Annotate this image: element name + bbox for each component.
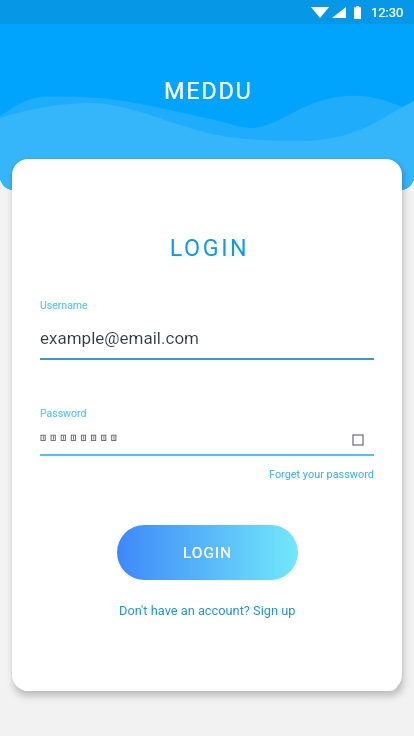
staticText: LOGIN xyxy=(183,544,233,562)
staticText: LOGIN xyxy=(17,234,402,261)
button[interactable]: Toggle password visibility xyxy=(350,432,366,444)
button[interactable]: LOGIN xyxy=(117,525,298,580)
button[interactable]: Don't have an account? Sign up xyxy=(119,603,296,618)
staticText: Password xyxy=(40,407,87,419)
staticText: MEDDU xyxy=(164,77,253,105)
staticText: 12:30 xyxy=(371,5,404,20)
button[interactable]: Forget your password xyxy=(269,468,402,481)
staticText: example@email.com xyxy=(40,328,199,348)
staticText: Username xyxy=(40,299,88,311)
